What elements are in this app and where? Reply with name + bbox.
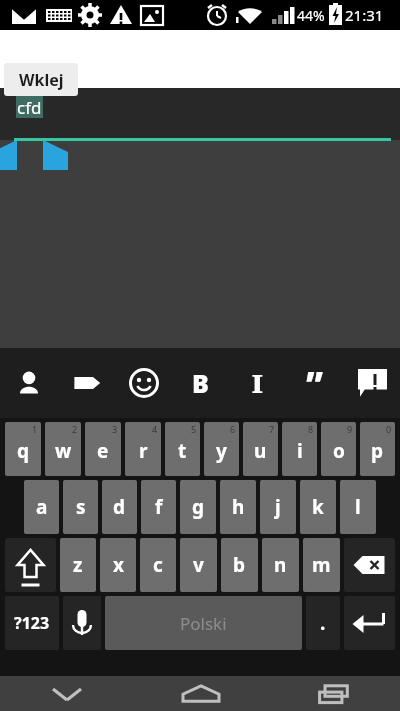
button[interactable]: a — [24, 480, 59, 534]
button[interactable]: Wklej — [4, 63, 78, 96]
staticText: m — [312, 552, 331, 578]
button[interactable]: n — [262, 538, 299, 592]
button[interactable]: Emoji — [115, 348, 172, 418]
button[interactable]: x — [100, 538, 136, 592]
staticText: u — [254, 438, 267, 464]
button[interactable]: Polski — [105, 596, 302, 650]
staticText: f — [155, 494, 163, 520]
staticText: 3 — [112, 423, 118, 435]
staticText: ” — [306, 360, 323, 406]
button[interactable]: Hide keyboard — [0, 676, 134, 711]
staticText: b — [233, 552, 246, 578]
button[interactable]: 5 — [165, 422, 200, 476]
button[interactable]: Spoiler — [343, 348, 400, 418]
button[interactable]: Backspace — [344, 538, 395, 592]
staticText: 5 — [191, 423, 197, 435]
button[interactable]: 2 — [45, 422, 81, 476]
button[interactable]: ?123 — [5, 596, 59, 650]
staticText: e — [97, 438, 109, 464]
button[interactable]: z — [60, 538, 96, 592]
button[interactable]: 8 — [282, 422, 317, 476]
button[interactable]: 0 — [360, 422, 395, 476]
button[interactable]: v — [180, 538, 217, 592]
staticText: k — [312, 494, 324, 520]
staticText: i — [297, 438, 303, 464]
staticText: 9 — [347, 423, 353, 435]
staticText: q — [17, 438, 30, 464]
staticText: p — [371, 438, 384, 464]
staticText: cfd — [17, 96, 42, 119]
button[interactable]: m — [303, 538, 340, 592]
button[interactable]: 3 — [85, 422, 121, 476]
staticText: v — [193, 552, 204, 578]
button[interactable]: h — [220, 480, 256, 534]
button[interactable]: k — [300, 480, 336, 534]
staticText: g — [192, 494, 205, 520]
staticText: Wklej — [19, 69, 64, 91]
staticText: 1 — [32, 423, 38, 435]
staticText: y — [216, 438, 227, 464]
staticText: 2 — [72, 423, 78, 435]
staticText: j — [275, 494, 281, 520]
button[interactable]: s — [63, 480, 98, 534]
button[interactable]: d — [102, 480, 137, 534]
button[interactable]: Quote — [286, 348, 343, 418]
button[interactable]: b — [221, 538, 258, 592]
staticText: w — [55, 438, 72, 464]
button[interactable]: 6 — [204, 422, 239, 476]
button[interactable]: Home — [134, 676, 267, 711]
button[interactable]: Voice input — [63, 596, 101, 650]
staticText: 21:31 — [345, 5, 384, 25]
button[interactable]: Shift — [5, 538, 56, 592]
button[interactable]: Recent apps — [267, 676, 400, 711]
staticText: r — [139, 438, 148, 464]
staticText: 8 — [308, 423, 314, 435]
staticText: Polski — [180, 612, 227, 635]
button[interactable]: 1 — [5, 422, 41, 476]
staticText: B — [192, 366, 209, 400]
staticText: x — [113, 552, 124, 578]
staticText: n — [274, 552, 287, 578]
staticText: h — [232, 494, 245, 520]
button[interactable]: f — [141, 480, 176, 534]
staticText: 7 — [269, 423, 275, 435]
staticText: o — [333, 438, 345, 464]
button[interactable]: . — [306, 596, 340, 650]
button[interactable]: Enter — [344, 596, 395, 650]
staticText: c — [153, 552, 163, 578]
button[interactable]: 9 — [321, 422, 356, 476]
staticText: 4 — [152, 423, 158, 435]
staticText: ?123 — [14, 612, 50, 634]
button[interactable]: l — [340, 480, 376, 534]
staticText: d — [113, 494, 126, 520]
button[interactable]: Italic — [229, 348, 286, 418]
button[interactable]: j — [260, 480, 296, 534]
button[interactable]: g — [180, 480, 216, 534]
staticText: z — [73, 552, 83, 578]
staticText: I — [252, 366, 263, 400]
button[interactable]: c — [140, 538, 176, 592]
staticText: . — [320, 610, 326, 636]
staticText: l — [355, 494, 361, 520]
staticText: 6 — [230, 423, 236, 435]
staticText: 44% — [297, 6, 325, 25]
staticText: s — [76, 494, 86, 520]
staticText: t — [178, 438, 187, 464]
button[interactable]: Tag — [58, 348, 115, 418]
button[interactable]: Bold — [172, 348, 229, 418]
button[interactable]: 4 — [125, 422, 161, 476]
staticText: 0 — [386, 423, 392, 435]
button[interactable]: 7 — [243, 422, 278, 476]
staticText: a — [36, 494, 48, 520]
button[interactable]: Mention — [0, 348, 58, 418]
